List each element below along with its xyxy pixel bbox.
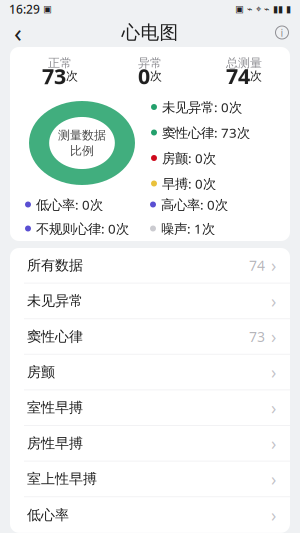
- staticText: ›: [271, 325, 276, 348]
- button[interactable]: 房颤: [10, 355, 290, 390]
- staticText: 低心率: [27, 506, 69, 524]
- staticText: 次: [150, 69, 162, 83]
- staticText: ▣ ⌁ ⌖ ⌁ ▮▮ ▮: [235, 4, 291, 14]
- staticText: 心电图: [121, 21, 178, 44]
- staticText: 未见异常: 0次: [162, 98, 242, 116]
- button[interactable]: 所有数据: [10, 248, 290, 284]
- staticText: ›: [271, 396, 276, 419]
- staticText: 房颤: [27, 363, 55, 381]
- staticText: 房性早搏: [27, 435, 83, 452]
- staticText: ›: [271, 432, 276, 455]
- staticText: ›: [271, 467, 276, 490]
- staticText: ▣: [40, 4, 52, 14]
- staticText: ›: [271, 254, 276, 277]
- staticText: 房颤: 0次: [162, 149, 216, 167]
- staticText: 次: [66, 69, 78, 83]
- staticText: 室上性早搏: [27, 470, 97, 487]
- button[interactable]: 室上性早搏: [10, 462, 290, 497]
- staticText: 低心率: 0次: [36, 196, 103, 213]
- staticText: ›: [271, 503, 276, 526]
- staticText: 未见异常: [27, 292, 83, 309]
- staticText: 73: [249, 327, 265, 346]
- staticText: ‹: [14, 16, 22, 49]
- staticText: 比例: [70, 143, 94, 158]
- button[interactable]: 室性早搏: [10, 390, 290, 426]
- staticText: ›: [271, 361, 276, 384]
- staticText: 总测量: [226, 56, 262, 70]
- staticText: 74: [249, 256, 265, 275]
- staticText: 次: [250, 69, 262, 83]
- button[interactable]: 未见异常: [10, 284, 290, 319]
- staticText: ›: [271, 289, 276, 312]
- staticText: 异常: [138, 56, 162, 70]
- staticText: 不规则心律: 0次: [36, 220, 129, 237]
- staticText: 窦性心律: [27, 328, 83, 345]
- staticText: 所有数据: [27, 257, 83, 274]
- staticText: 室性早搏: [27, 399, 83, 416]
- button[interactable]: 窦性心律: [10, 319, 290, 355]
- staticText: 测量数据: [58, 128, 106, 142]
- staticText: 早搏: 0次: [162, 175, 216, 192]
- button[interactable]: Info: [264, 19, 300, 46]
- staticText: 窦性心律: 73次: [162, 124, 250, 141]
- staticText: 73: [42, 62, 66, 90]
- staticText: i: [280, 25, 283, 40]
- staticText: 0: [138, 62, 150, 90]
- staticText: 正常: [48, 56, 72, 70]
- button[interactable]: Back: [0, 19, 36, 46]
- staticText: 噪声: 1次: [161, 220, 215, 237]
- staticText: 74: [226, 62, 250, 90]
- staticText: 高心率: 0次: [161, 196, 228, 213]
- button[interactable]: 房性早搏: [10, 426, 290, 462]
- button[interactable]: 低心率: [10, 497, 290, 533]
- staticText: 16:29: [9, 1, 40, 17]
